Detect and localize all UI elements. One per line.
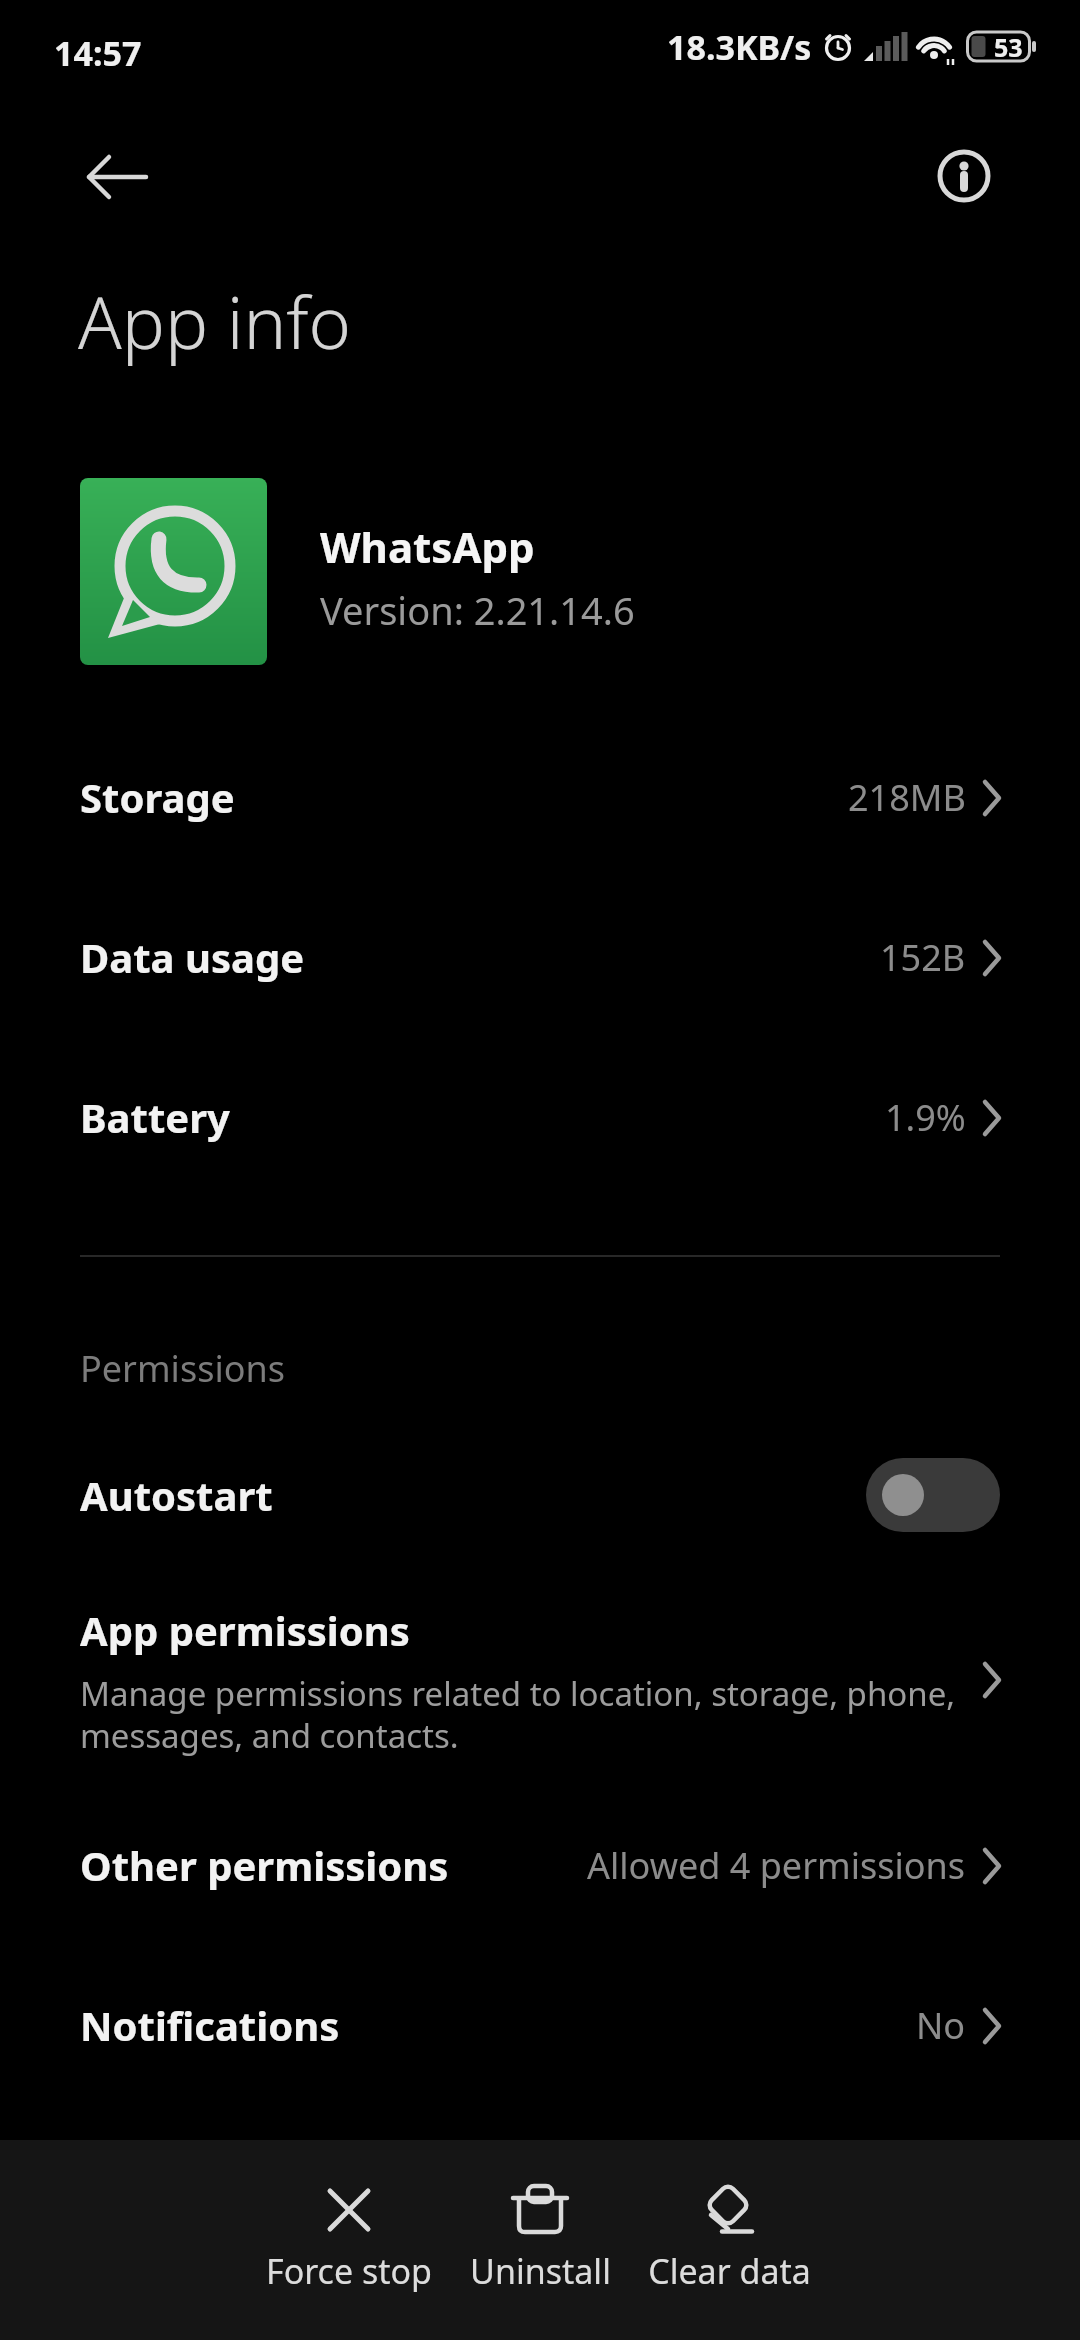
- staticText: Battery: [80, 1090, 230, 1144]
- button[interactable]: Clear data: [599, 2186, 859, 2294]
- button[interactable]: [62, 148, 172, 206]
- staticText: Allowed 4 permissions: [587, 1841, 966, 1890]
- button[interactable]: Data usage: [0, 877, 1080, 1037]
- staticText: Data usage: [80, 930, 305, 984]
- staticText: App permissions: [80, 1603, 410, 1657]
- button[interactable]: Autostart: [0, 1415, 1080, 1575]
- staticText: Notifications: [80, 1998, 340, 2052]
- button[interactable]: [930, 142, 998, 210]
- staticText: App info: [78, 272, 352, 370]
- staticText: Uninstall: [470, 2248, 611, 2294]
- staticText: Other permissions: [80, 1838, 449, 1892]
- staticText: 152B: [880, 933, 966, 982]
- staticText: No: [916, 2001, 966, 2050]
- button[interactable]: Uninstall: [410, 2186, 670, 2294]
- staticText: Force stop: [266, 2248, 432, 2294]
- staticText: 53: [994, 30, 1023, 64]
- staticText: 14:57: [54, 30, 142, 76]
- staticText: WhatsApp: [320, 518, 535, 575]
- button[interactable]: Notifications: [0, 1945, 1080, 2105]
- button[interactable]: Other permissions: [0, 1785, 1080, 1945]
- staticText: 1.9%: [885, 1093, 966, 1142]
- staticText: 18.3KB/s: [667, 24, 812, 70]
- button[interactable]: Storage: [0, 717, 1080, 877]
- button[interactable]: Force stop: [219, 2186, 479, 2294]
- staticText: Version: 2.21.14.6: [320, 584, 635, 636]
- staticText: Permissions: [80, 1344, 285, 1393]
- staticText: 218MB: [848, 773, 966, 822]
- button[interactable]: App permissions: [0, 1595, 1080, 1765]
- staticText: Autostart: [80, 1468, 273, 1522]
- button[interactable]: Battery: [0, 1037, 1080, 1197]
- staticText: Storage: [80, 770, 235, 824]
- staticText: Clear data: [648, 2248, 811, 2294]
- staticText: Manage permissions related to location, …: [80, 1671, 956, 1758]
